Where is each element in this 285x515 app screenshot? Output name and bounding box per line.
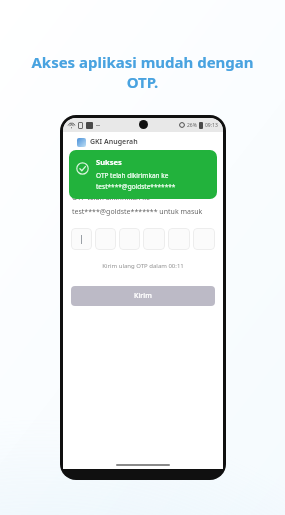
- button[interactable]: [143, 228, 165, 250]
- staticText: 26%: [187, 122, 197, 129]
- staticText: Kirim: [134, 291, 152, 301]
- staticText: 09:13: [205, 122, 218, 129]
- other: Sukses: [76, 162, 89, 175]
- staticText: Kirim ulang OTP dalam 00:11: [63, 262, 223, 270]
- button[interactable]: Kirim: [71, 286, 215, 306]
- button[interactable]: Sukses: [69, 150, 217, 199]
- button[interactable]: [71, 228, 92, 250]
- staticText: GKI Anugerah: [90, 137, 138, 147]
- staticText: Akses aplikasi mudah dengan OTP.: [12, 52, 273, 92]
- staticText: Sukses: [96, 157, 122, 167]
- button[interactable]: [95, 228, 116, 250]
- staticText: test****@goldste******* untuk masuk: [72, 207, 203, 217]
- staticText: test****@goldste*******: [96, 182, 176, 191]
- staticText: OTP telah dikirimkan ke: [72, 193, 150, 203]
- button[interactable]: [119, 228, 140, 250]
- staticText: OTP telah dikirimkan ke: [96, 171, 169, 180]
- button[interactable]: [168, 228, 190, 250]
- button[interactable]: [193, 228, 215, 250]
